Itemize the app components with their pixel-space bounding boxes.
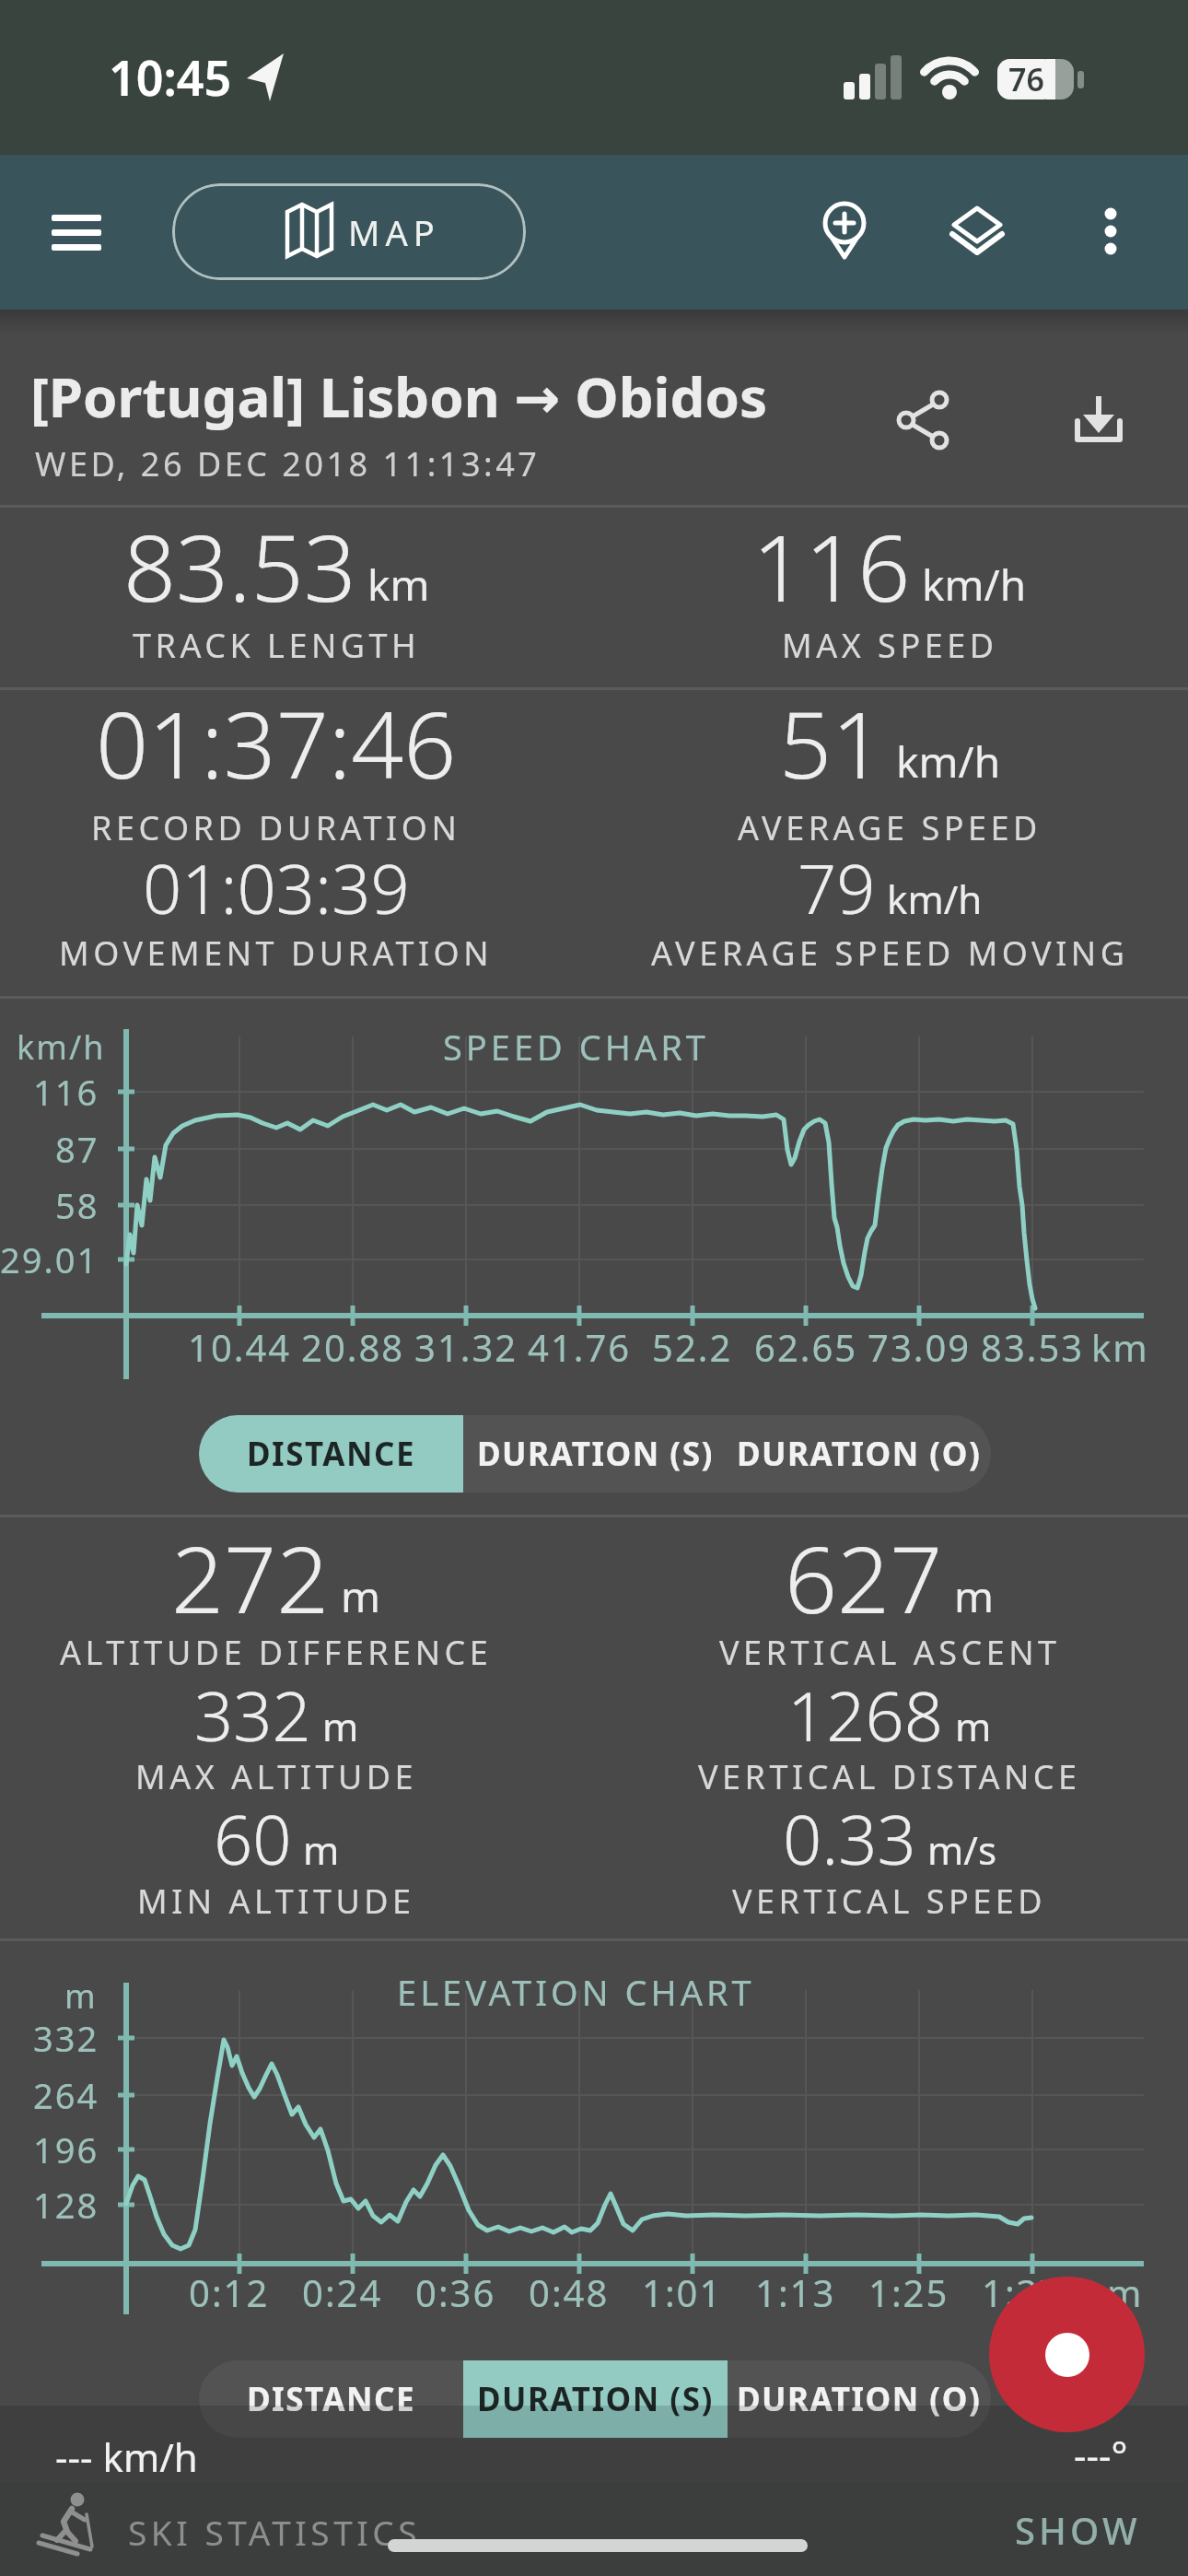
staticText: --- km/h (55, 2430, 198, 2483)
staticText: 0:12 (189, 2267, 270, 2317)
staticText: 1:01 (642, 2267, 723, 2317)
staticText: km/h (896, 732, 1001, 790)
staticText: 60 (214, 1792, 292, 1885)
button[interactable]: DURATION (S) (463, 2360, 728, 2438)
staticText: 76 (1008, 58, 1044, 100)
staticText: 116 (33, 1068, 99, 1116)
staticText: 52.2 (652, 1322, 733, 1372)
staticText: VERTICAL ASCENT (719, 1630, 1061, 1675)
button[interactable] (1074, 188, 1147, 275)
staticText: 31.32 (414, 1322, 518, 1372)
button[interactable] (940, 188, 1014, 275)
staticText: 73.09 (868, 1322, 972, 1372)
staticText: 83.53 (981, 1322, 1085, 1372)
staticText: DISTANCE (247, 2377, 416, 2421)
staticText: 0.33 (783, 1792, 916, 1885)
staticText: 1:13 (755, 2267, 836, 2317)
button[interactable]: DISTANCE (199, 2360, 463, 2438)
staticText: ---° (1074, 2429, 1128, 2481)
staticText: MAX ALTITUDE (135, 1754, 418, 1799)
button[interactable] (33, 195, 121, 269)
staticText: MAP (348, 208, 440, 256)
staticText: ELEVATION CHART (397, 1968, 755, 2016)
staticText: m (303, 1823, 340, 1876)
staticText: 0:48 (529, 2267, 610, 2317)
staticText: 128 (33, 2181, 99, 2229)
staticText: MAX SPEED (782, 623, 998, 668)
staticText: WED, 26 DEC 2018 11:13:47 (35, 441, 541, 486)
staticText: 1:37 (982, 2267, 1063, 2317)
staticText: 332 (33, 2014, 99, 2062)
staticText: 332 (194, 1669, 311, 1762)
staticText: 87 (55, 1125, 99, 1173)
staticText: DISTANCE (247, 1432, 416, 1476)
staticText: RECORD DURATION (91, 805, 461, 850)
button[interactable]: DURATION (O) (728, 1415, 991, 1493)
staticText: 0:36 (415, 2267, 496, 2317)
staticText: MOVEMENT DURATION (59, 931, 494, 976)
staticText: m/s (927, 1823, 997, 1876)
staticText: MIN ALTITUDE (137, 1879, 415, 1924)
staticText: m (955, 1700, 992, 1752)
staticText: 29.01 (0, 1235, 99, 1283)
staticText: km/h (922, 556, 1027, 614)
staticText: 10.44 (188, 1322, 292, 1372)
staticText: m (64, 1973, 98, 2019)
staticText: VERTICAL SPEED (732, 1879, 1047, 1924)
button[interactable]: DURATION (S) (463, 1415, 728, 1493)
button[interactable]: SHOW (995, 2493, 1160, 2567)
staticText: km (367, 556, 430, 614)
staticText: m (341, 1567, 381, 1625)
button[interactable] (172, 183, 526, 280)
button[interactable]: DURATION (O) (728, 2360, 991, 2438)
staticText: VERTICAL DISTANCE (698, 1754, 1081, 1799)
staticText: TRACK LENGTH (133, 623, 421, 668)
staticText: SKI STATISTICS (128, 2509, 421, 2555)
staticText: m (322, 1700, 359, 1752)
staticText: 83.53 (123, 503, 356, 628)
staticText: ALTITUDE DIFFERENCE (60, 1630, 493, 1675)
staticText: 627 (785, 1515, 943, 1640)
staticText: AVERAGE SPEED (738, 805, 1042, 850)
staticText: 116 (752, 503, 911, 628)
staticText: SPEED CHART (443, 1023, 709, 1071)
staticText: 01:03:39 (143, 841, 410, 934)
staticText: 1268 (787, 1669, 944, 1762)
staticText: 196 (33, 2125, 99, 2173)
staticText: DURATION (O) (737, 1432, 982, 1476)
staticText: km/h (17, 1025, 106, 1070)
staticText: km/h (887, 872, 983, 925)
button[interactable] (869, 363, 980, 474)
button[interactable]: DISTANCE (199, 1415, 463, 1493)
staticText: 41.76 (528, 1322, 632, 1372)
staticText: SHOW (1015, 2505, 1141, 2555)
staticText: 264 (33, 2071, 99, 2119)
staticText: DURATION (S) (477, 1432, 714, 1476)
staticText: 51 (779, 680, 885, 805)
staticText: 10:45 (109, 44, 232, 110)
staticText: DURATION (O) (737, 2377, 982, 2421)
button[interactable] (1043, 363, 1154, 474)
staticText: [Portugal] Lisbon → Obidos (30, 358, 768, 434)
staticText: 20.88 (301, 1322, 405, 1372)
staticText: 58 (55, 1181, 99, 1229)
staticText: DURATION (S) (477, 2377, 714, 2421)
staticText: AVERAGE SPEED MOVING (651, 931, 1129, 976)
button[interactable] (989, 2277, 1145, 2432)
staticText: m (954, 1567, 995, 1625)
staticText: 0:24 (302, 2267, 383, 2317)
staticText: 1:25 (868, 2267, 949, 2317)
staticText: 272 (171, 1515, 330, 1640)
button[interactable] (808, 186, 881, 278)
staticText: m (1107, 2267, 1144, 2317)
staticText: 01:37:46 (96, 680, 457, 805)
staticText: km (1091, 1322, 1149, 1372)
staticText: 79 (798, 841, 876, 934)
staticText: 62.65 (754, 1322, 858, 1372)
